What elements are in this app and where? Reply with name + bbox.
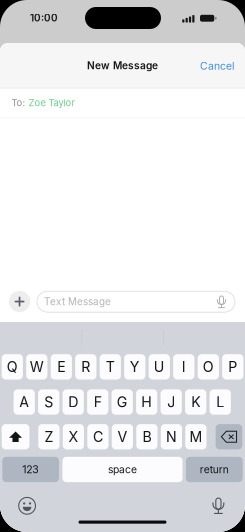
staticText: F xyxy=(94,393,102,411)
staticText: X xyxy=(68,428,78,445)
staticText: H xyxy=(141,393,152,411)
button[interactable]: B xyxy=(136,424,157,449)
button[interactable]: U xyxy=(149,354,170,379)
button[interactable]: T xyxy=(100,354,121,379)
staticText: space xyxy=(108,463,137,476)
staticText: J xyxy=(167,393,175,411)
button[interactable]: return xyxy=(186,457,243,482)
staticText: W xyxy=(30,358,44,375)
staticText: C xyxy=(93,428,103,445)
button[interactable]: A xyxy=(14,389,35,415)
staticText: K xyxy=(191,393,200,411)
staticText: 10:00 xyxy=(30,12,58,24)
staticText: Z xyxy=(44,428,53,445)
staticText: T xyxy=(106,358,115,375)
staticText: N xyxy=(166,428,177,445)
button[interactable]: space xyxy=(62,457,182,482)
button[interactable]: P xyxy=(222,354,243,379)
staticText: B xyxy=(142,428,151,445)
button[interactable]: I xyxy=(173,354,194,379)
staticText: V xyxy=(117,428,127,445)
staticText: P xyxy=(228,358,237,375)
button[interactable]: C xyxy=(87,424,108,449)
button[interactable]: R xyxy=(75,354,96,379)
button[interactable]: Dictation xyxy=(212,497,224,514)
button[interactable]: W xyxy=(26,354,47,379)
button[interactable]: G xyxy=(112,389,133,415)
button[interactable]: O xyxy=(198,354,219,379)
button[interactable]: H xyxy=(136,389,157,415)
staticText: To: xyxy=(12,97,26,109)
button[interactable]: K xyxy=(185,389,206,415)
button[interactable]: Q xyxy=(2,354,23,379)
button[interactable]: V xyxy=(112,424,133,449)
staticText: M xyxy=(189,428,202,445)
button[interactable]: Cancel xyxy=(0,43,52,73)
staticText: G xyxy=(117,393,128,411)
button[interactable]: Dictate xyxy=(216,295,226,308)
staticText: R xyxy=(81,358,90,375)
button[interactable]: Shift xyxy=(2,424,29,449)
button[interactable]: Z xyxy=(38,424,59,449)
staticText: O xyxy=(203,358,214,375)
staticText: I xyxy=(182,358,186,375)
button[interactable]: D xyxy=(63,389,84,415)
button[interactable]: J xyxy=(161,389,182,415)
staticText: Text Message xyxy=(44,296,111,308)
button[interactable]: Delete xyxy=(216,424,242,449)
staticText: E xyxy=(57,358,65,375)
staticText: return xyxy=(200,463,229,476)
button[interactable]: E xyxy=(51,354,72,379)
button[interactable]: Emoji keyboard xyxy=(19,497,35,514)
staticText: U xyxy=(154,358,165,375)
button[interactable]: 123 xyxy=(2,457,59,482)
button[interactable]: S xyxy=(38,389,59,415)
staticText: S xyxy=(44,393,53,411)
staticText: Zoe Taylor xyxy=(26,97,76,109)
button[interactable]: F xyxy=(87,389,108,415)
staticText: Cancel xyxy=(200,60,235,72)
staticText: New Message xyxy=(87,59,158,72)
staticText: Y xyxy=(130,358,140,375)
button[interactable]: Add attachment xyxy=(9,291,30,312)
button[interactable]: Y xyxy=(124,354,145,379)
staticText: A xyxy=(19,393,29,411)
button[interactable]: N xyxy=(161,424,182,449)
button[interactable]: L xyxy=(210,389,231,415)
button[interactable]: X xyxy=(63,424,84,449)
button[interactable]: M xyxy=(185,424,206,449)
staticText: Q xyxy=(7,358,18,375)
staticText: 123 xyxy=(22,463,39,476)
staticText: D xyxy=(68,393,78,411)
staticText: L xyxy=(216,393,224,411)
